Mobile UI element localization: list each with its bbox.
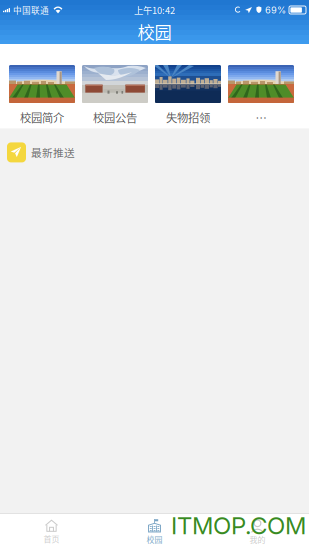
staticText: 我的	[249, 534, 265, 545]
staticText: …	[255, 109, 266, 125]
staticText: 上午10:42	[134, 3, 175, 17]
staticText: 69%	[265, 4, 286, 16]
staticText: 校园	[137, 19, 171, 44]
button[interactable]: 首页	[0, 515, 103, 549]
staticText: 中国联通	[13, 4, 49, 16]
button[interactable]: 最新推送	[0, 128, 309, 162]
staticText: 失物招领	[166, 109, 210, 125]
button[interactable]: 校园	[103, 515, 206, 549]
button[interactable]: 失物招领	[155, 65, 221, 125]
staticText: 最新推送	[31, 145, 75, 160]
button[interactable]: 我的	[206, 515, 309, 549]
staticText: 校园公告	[93, 109, 137, 125]
staticText: ITMOP.COM	[171, 511, 306, 540]
staticText: 校园	[146, 533, 162, 545]
staticText: 校园简介	[20, 109, 64, 125]
button[interactable]: …	[228, 65, 294, 125]
button[interactable]: 校园简介	[9, 65, 75, 125]
button[interactable]: 校园公告	[82, 65, 148, 125]
staticText: 首页	[43, 533, 59, 545]
